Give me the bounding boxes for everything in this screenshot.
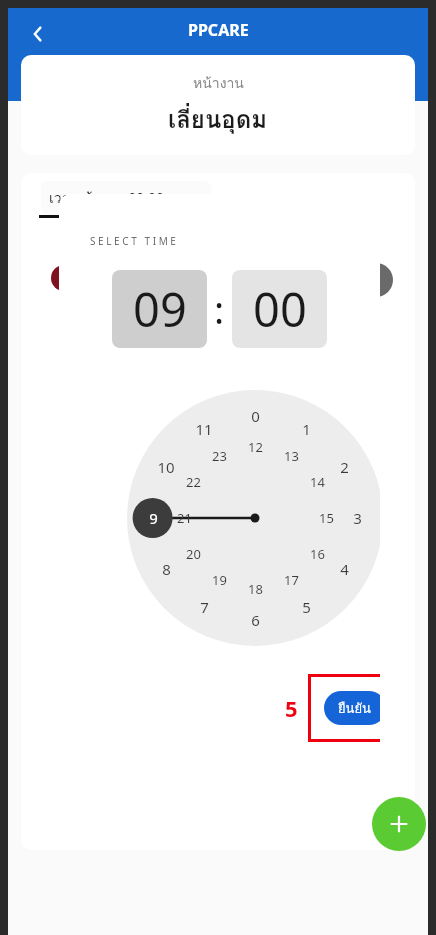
staticText: เวลาเข้างาน 09:00 (49, 187, 164, 209)
button[interactable]: 3 (341, 506, 373, 530)
staticText: 13 (284, 447, 299, 465)
staticText: 14 (310, 473, 325, 491)
button[interactable]: Add (372, 797, 426, 851)
button[interactable]: 00 (232, 270, 327, 348)
button[interactable]: 9 (137, 506, 169, 530)
button[interactable]: 11 (188, 417, 220, 441)
button[interactable]: 14 (301, 470, 333, 494)
staticText: 17 (284, 571, 299, 589)
button[interactable]: 10 (150, 455, 182, 479)
staticText: 23 (212, 447, 227, 465)
button[interactable]: 19 (203, 568, 235, 592)
button[interactable]: 12 (239, 435, 271, 459)
button[interactable]: 6 (239, 608, 271, 632)
staticText: 15 (319, 509, 334, 527)
button[interactable]: 1 (290, 417, 322, 441)
button[interactable]: 4 (328, 557, 360, 581)
button[interactable]: ยืนยัน (324, 691, 380, 725)
staticText: 4 (340, 559, 349, 579)
staticText: 8 (162, 559, 171, 579)
button[interactable]: 23 (203, 444, 235, 468)
staticText: เลี่ยนอุดม (168, 100, 268, 138)
staticText: ยืนยัน (338, 698, 372, 719)
button[interactable]: Back (18, 14, 58, 54)
button[interactable]: หน้างาน (21, 55, 415, 155)
staticText: 18 (248, 580, 263, 598)
staticText: : (214, 283, 225, 335)
staticText: 5 (302, 597, 311, 617)
staticText: 2 (340, 457, 349, 477)
staticText: 19 (212, 571, 227, 589)
staticText: 09 (133, 277, 187, 341)
staticText: S E L E C T T I M E (90, 234, 176, 248)
staticText: 16 (310, 545, 325, 563)
button[interactable]: 5 (290, 595, 322, 619)
staticText: 00 (253, 277, 307, 341)
staticText: 20 (186, 545, 201, 563)
staticText: 11 (195, 419, 213, 439)
staticText: 3 (353, 508, 362, 528)
button[interactable]: 16 (301, 542, 333, 566)
staticText: 1 (302, 419, 311, 439)
staticText: 6 (251, 610, 260, 630)
button[interactable]: 17 (275, 568, 307, 592)
button[interactable]: 13 (275, 444, 307, 468)
button[interactable]: 15 (310, 506, 342, 530)
button[interactable]: 18 (239, 577, 271, 601)
button[interactable]: 7 (188, 595, 220, 619)
staticText: 10 (157, 457, 175, 477)
button[interactable]: 20 (177, 542, 209, 566)
button[interactable]: 21 (168, 506, 200, 530)
staticText: 22 (186, 473, 201, 491)
staticText: 9 (149, 508, 158, 528)
staticText: 21 (177, 509, 192, 527)
staticText: 0 (251, 406, 260, 426)
staticText: 7 (200, 597, 209, 617)
staticText: หน้างาน (193, 72, 244, 94)
button[interactable]: 2 (328, 455, 360, 479)
button[interactable]: 8 (150, 557, 182, 581)
staticText: PPCARE (188, 19, 249, 41)
button[interactable]: 09 (112, 270, 207, 348)
button[interactable]: เวลาเข้างาน 09:00 (41, 181, 211, 215)
button[interactable]: 22 (177, 470, 209, 494)
button[interactable]: 0 (239, 404, 271, 428)
staticText: 5 (285, 693, 298, 723)
staticText: 12 (248, 438, 263, 456)
